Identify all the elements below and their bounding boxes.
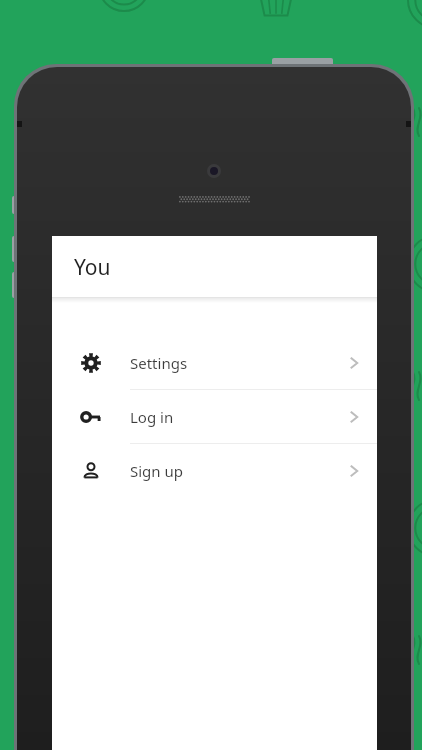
staticText: Sign up xyxy=(130,461,183,481)
staticText: You xyxy=(74,253,111,282)
button[interactable]: Log in xyxy=(52,390,377,444)
button[interactable]: Sign up xyxy=(52,444,377,498)
staticText: Log in xyxy=(130,407,174,427)
staticText: Settings xyxy=(130,353,188,373)
button[interactable]: Settings xyxy=(52,336,377,390)
